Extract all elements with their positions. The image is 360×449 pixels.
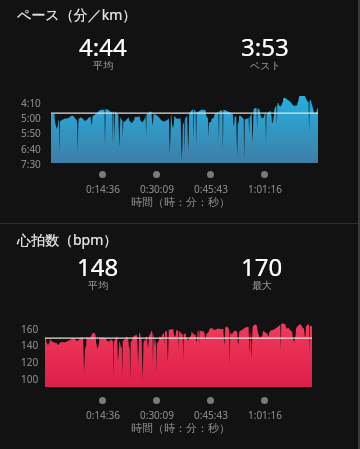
staticText: 100 (21, 372, 39, 386)
staticText: 心拍数（bpm） (17, 230, 118, 249)
staticText: 120 (21, 355, 39, 369)
staticText: 170 (241, 250, 283, 283)
staticText: 0:30:09 (140, 408, 174, 422)
staticText: 148 (77, 250, 119, 283)
staticText: 0:45:43 (194, 182, 228, 196)
staticText: 0:14:36 (86, 408, 120, 422)
staticText: 時間（時：分：秒） (131, 195, 230, 209)
staticText: 160 (21, 322, 39, 336)
staticText: 1:01:16 (248, 182, 282, 196)
staticText: 時間（時：分：秒） (131, 421, 230, 435)
staticText: 140 (21, 338, 39, 352)
staticText: 0:14:36 (86, 182, 120, 196)
staticText: 4:44 (79, 30, 127, 63)
staticText: 6:40 (21, 142, 41, 156)
staticText: 1:01:16 (248, 408, 282, 422)
staticText: 0:45:43 (194, 408, 228, 422)
staticText: 平均 (88, 279, 108, 292)
staticText: 平均 (93, 59, 113, 72)
staticText: 5:50 (21, 126, 41, 140)
staticText: 4:10 (21, 96, 41, 110)
staticText: ペース（分／km） (17, 5, 137, 24)
staticText: 最大 (252, 279, 272, 292)
staticText: 7:30 (21, 157, 41, 171)
staticText: 3:53 (241, 30, 289, 63)
staticText: 5:00 (21, 111, 41, 125)
staticText: ベスト (250, 59, 281, 72)
staticText: 0:30:09 (140, 182, 174, 196)
